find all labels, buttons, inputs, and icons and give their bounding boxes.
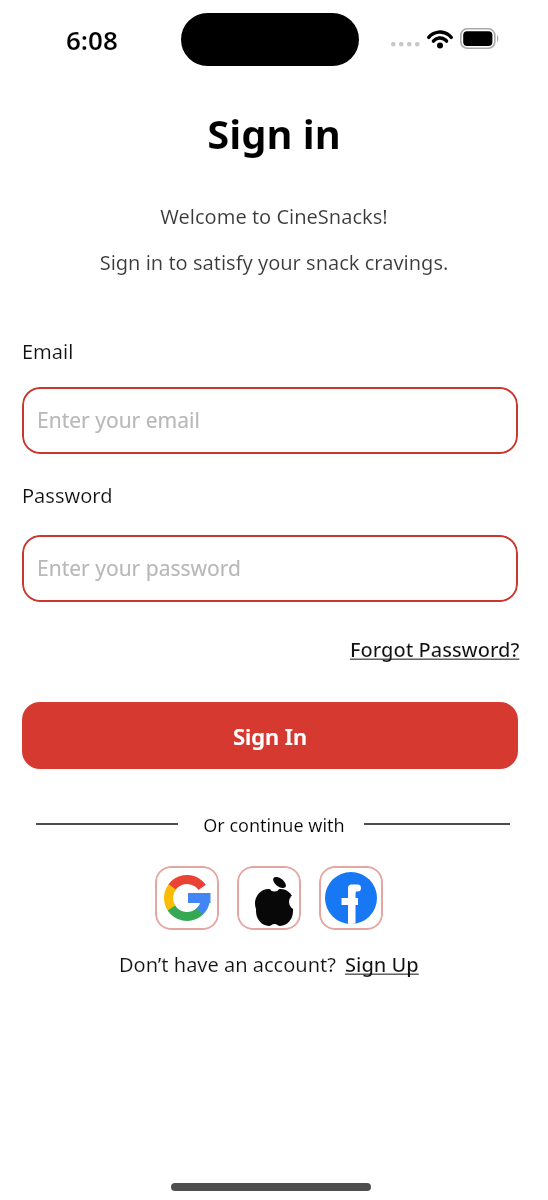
button[interactable]: Sign In — [22, 702, 518, 769]
staticText: Sign In — [233, 721, 308, 751]
staticText: Sign in — [0, 106, 548, 160]
button[interactable]: Forgot Password? — [350, 636, 520, 663]
staticText: Enter your password — [37, 554, 241, 583]
staticText: Or continue with — [0, 813, 548, 838]
staticText: Email — [22, 338, 74, 365]
button[interactable]: Enter your password — [22, 535, 518, 602]
button[interactable]: Enter your email — [22, 387, 518, 454]
staticText: Password — [22, 482, 113, 509]
staticText: Forgot Password? — [350, 636, 520, 663]
button[interactable]: Sign Up — [345, 951, 419, 978]
staticText: Sign in to satisfy your snack cravings. — [0, 249, 548, 276]
staticText: 6:08 — [66, 22, 118, 57]
button[interactable] — [155, 866, 219, 930]
staticText: Sign Up — [345, 951, 419, 978]
button[interactable] — [319, 866, 383, 930]
button[interactable] — [237, 866, 301, 930]
staticText: Enter your email — [37, 406, 200, 435]
staticText: Welcome to CineSnacks! — [0, 203, 548, 230]
staticText: Don’t have an account? — [119, 951, 336, 978]
